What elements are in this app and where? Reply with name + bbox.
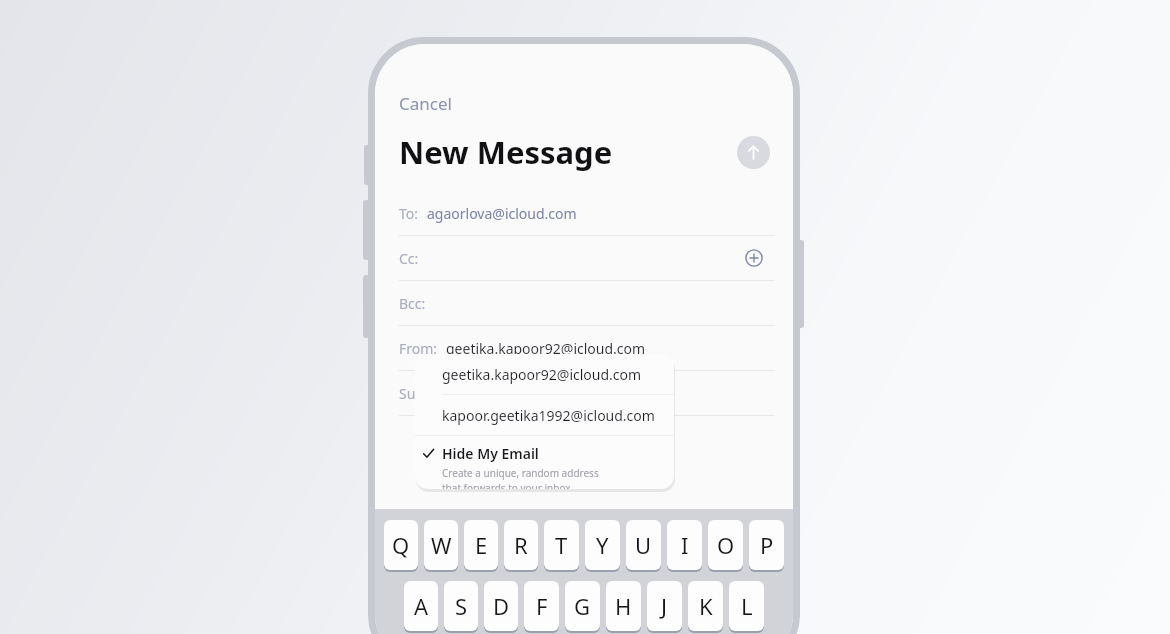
staticText: that forwards to your inbox. [442,481,574,489]
staticText: Bcc: [399,294,426,313]
staticText: F [536,591,548,621]
button[interactable]: K [688,581,723,631]
button[interactable]: U [626,520,661,570]
staticText: J [661,591,668,621]
staticText: A [414,591,429,621]
button[interactable]: Add contact [744,248,764,268]
staticText: Create a unique, random address [442,466,599,480]
button[interactable]: A [404,581,438,631]
staticText: W [431,530,452,560]
button[interactable]: Cc: [399,236,775,281]
staticText: Y [596,530,609,560]
button[interactable]: P [749,520,784,570]
staticText: To: [399,204,419,223]
staticText: G [574,591,591,621]
staticText: Q [392,530,410,560]
button[interactable]: To: [399,191,775,236]
staticText: geetika.kapoor92@icloud.com [446,339,646,358]
button[interactable]: T [544,520,579,570]
staticText: New Message [399,131,613,173]
staticText: kapoor.geetika1992@icloud.com [442,406,655,425]
button[interactable]: R [504,520,538,570]
button[interactable]: Q [384,520,418,570]
button[interactable]: W [424,520,458,570]
staticText: D [493,591,510,621]
button[interactable]: From: [399,326,775,371]
staticText: Cc: [399,249,419,268]
button[interactable]: D [484,581,518,631]
staticText: S [455,591,468,621]
staticText: Subject: [399,384,451,403]
staticText: T [555,530,568,560]
staticText: K [699,591,713,621]
button[interactable]: Send [737,136,770,169]
staticText: I [681,530,689,560]
button[interactable]: F [524,581,559,631]
staticText: Cancel [399,92,452,115]
staticText: agaorlova@icloud.com [427,204,577,223]
staticText: L [741,591,753,621]
staticText: U [635,530,652,560]
staticText: H [615,591,632,621]
staticText: geetika.kapoor92@icloud.com [442,365,642,384]
staticText: O [717,530,735,560]
button[interactable]: L [729,581,764,631]
button[interactable]: Y [585,520,620,570]
button[interactable]: Hide My Email [415,436,674,489]
staticText: Hide My Email [442,444,539,463]
staticText: P [760,530,774,560]
staticText: E [475,530,488,560]
staticText: From: [399,339,438,358]
staticText: R [514,530,528,560]
button[interactable]: Bcc: [399,281,775,326]
button[interactable]: O [708,520,743,570]
button[interactable]: E [464,520,498,570]
button[interactable]: Subject: [399,371,775,416]
button[interactable]: J [647,581,682,631]
button[interactable]: geetika.kapoor92@icloud.com [415,354,674,394]
button[interactable]: G [565,581,600,631]
button[interactable]: kapoor.geetika1992@icloud.com [415,395,674,435]
button[interactable]: I [667,520,702,570]
button[interactable]: H [606,581,641,631]
button[interactable]: S [444,581,478,631]
